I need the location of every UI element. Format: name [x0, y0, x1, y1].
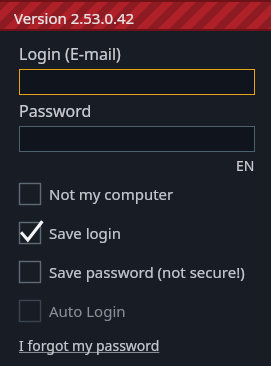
- staticText: EN: [236, 156, 255, 175]
- button[interactable]: [19, 69, 255, 95]
- button[interactable]: Not my computer: [19, 183, 255, 205]
- button[interactable]: [19, 126, 255, 152]
- staticText: Login (E-mail): [19, 43, 121, 65]
- staticText: Password: [19, 100, 92, 122]
- staticText: Save password (not secure!): [49, 262, 245, 282]
- button[interactable]: Save password (not secure!): [19, 261, 255, 283]
- staticText: I forgot my password: [19, 336, 160, 355]
- button[interactable]: Auto Login: [19, 300, 255, 322]
- button[interactable]: EN: [19, 152, 255, 177]
- staticText: Save login: [49, 223, 121, 243]
- staticText: Auto Login: [49, 301, 126, 321]
- staticText: Not my computer: [49, 184, 174, 204]
- staticText: Version 2.53.0.42: [14, 8, 135, 28]
- button[interactable]: I forgot my password: [19, 336, 160, 355]
- button[interactable]: Save login: [19, 222, 255, 244]
